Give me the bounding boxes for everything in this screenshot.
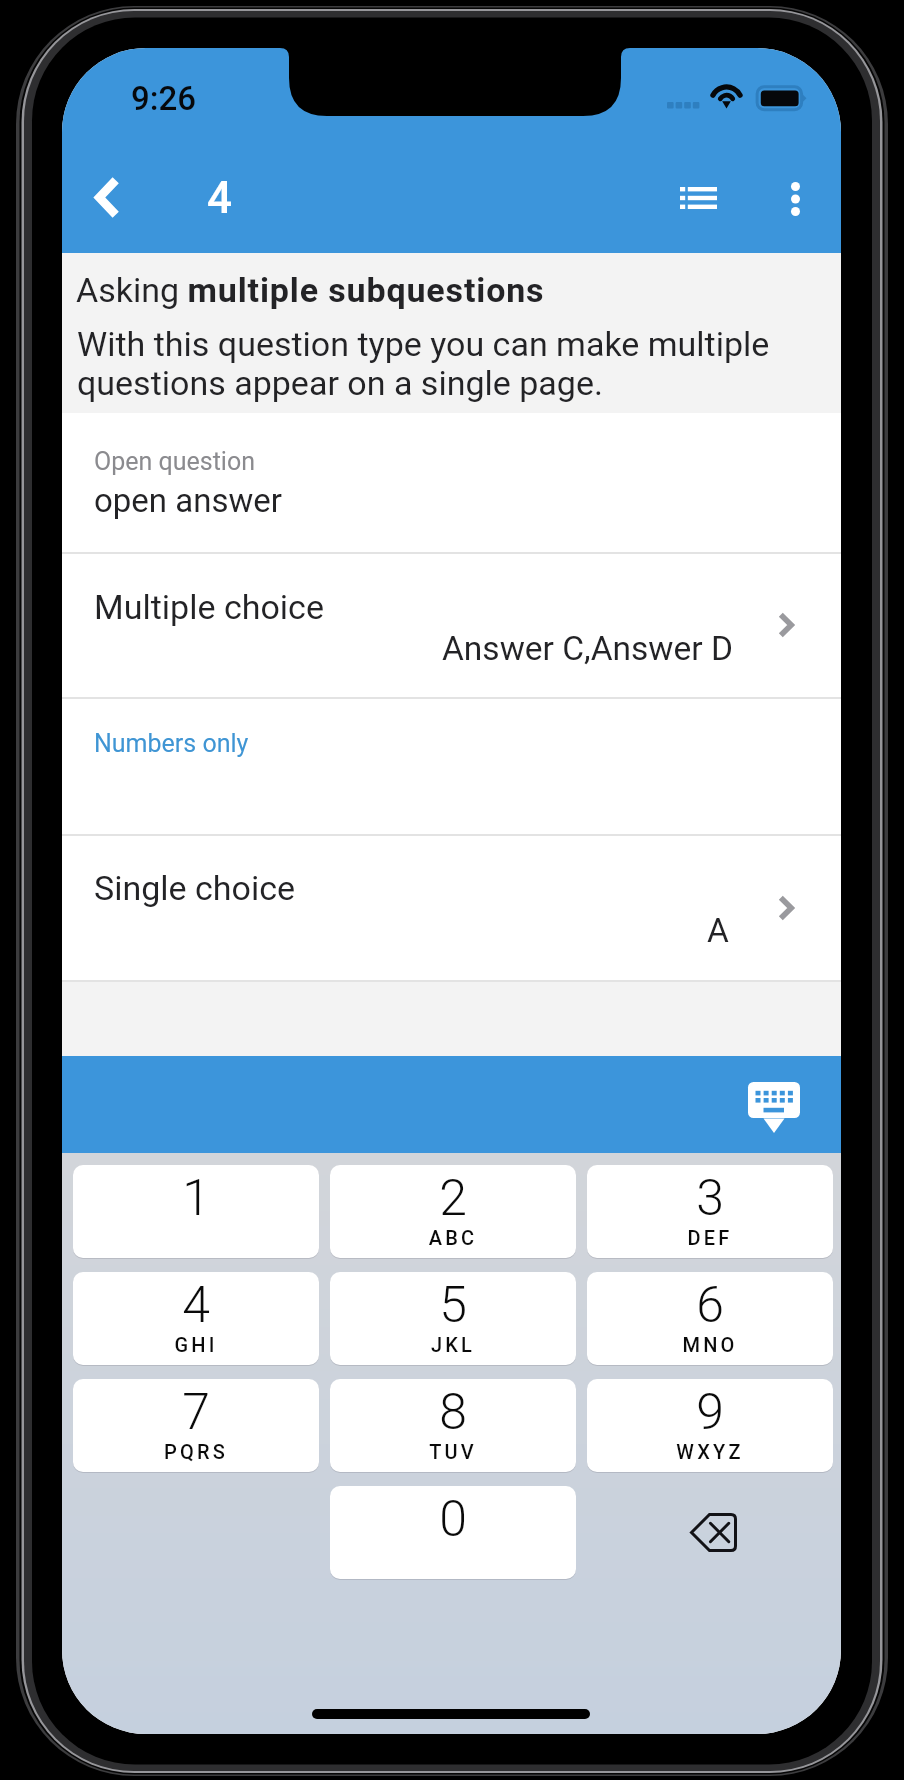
button[interactable]: 3 — [587, 1165, 833, 1258]
staticText: 9 — [587, 1383, 833, 1442]
staticText: MNO — [587, 1333, 833, 1356]
button[interactable]: Back — [62, 149, 159, 245]
staticText: 8 — [330, 1383, 576, 1442]
staticText: Numbers only — [94, 729, 249, 758]
staticText: 5 — [330, 1276, 576, 1335]
staticText: Answer C,Answer D — [442, 629, 733, 668]
staticText: DEF — [587, 1226, 833, 1249]
staticText: 3 — [587, 1169, 833, 1228]
staticText: Asking multiple subquestions — [76, 270, 545, 310]
button[interactable]: 8 — [330, 1379, 576, 1472]
staticText: WXYZ — [587, 1440, 833, 1463]
button[interactable]: Single choice — [62, 836, 841, 980]
staticText: PQRS — [73, 1440, 319, 1463]
staticText: 4 — [207, 172, 233, 224]
button[interactable]: Numbers only — [62, 699, 841, 834]
button[interactable]: 1 — [73, 1165, 319, 1258]
button[interactable]: 4 — [73, 1272, 319, 1365]
button[interactable]: Hide keyboard — [724, 1065, 824, 1151]
staticText: GHI — [73, 1333, 319, 1356]
button[interactable]: 9 — [587, 1379, 833, 1472]
staticText: Open question — [94, 447, 255, 476]
staticText: 9:26 — [131, 79, 197, 118]
button[interactable]: List view — [658, 154, 738, 242]
button[interactable]: 5 — [330, 1272, 576, 1365]
button[interactable]: 7 — [73, 1379, 319, 1472]
button[interactable]: 0 — [330, 1486, 576, 1579]
button[interactable]: Multiple choice — [62, 554, 841, 697]
staticText: ABC — [330, 1226, 576, 1249]
staticText: 2 — [330, 1169, 576, 1228]
button[interactable]: 6 — [587, 1272, 833, 1365]
staticText: With this question type you can make mul… — [77, 324, 787, 403]
staticText: open answer — [94, 481, 282, 520]
staticText: 0 — [330, 1490, 576, 1549]
staticText: TUV — [330, 1440, 576, 1463]
staticText: A — [707, 911, 729, 950]
button[interactable]: 2 — [330, 1165, 576, 1258]
button[interactable]: Backspace — [665, 1492, 761, 1572]
staticText: Multiple choice — [94, 587, 324, 627]
button[interactable]: Open question — [62, 413, 841, 552]
button[interactable]: More options — [756, 154, 834, 244]
staticText: 1 — [73, 1169, 319, 1228]
staticText: 7 — [73, 1383, 319, 1442]
staticText: 4 — [73, 1276, 319, 1335]
staticText: 6 — [587, 1276, 833, 1335]
staticText: Single choice — [94, 868, 296, 908]
staticText: JKL — [330, 1333, 576, 1356]
